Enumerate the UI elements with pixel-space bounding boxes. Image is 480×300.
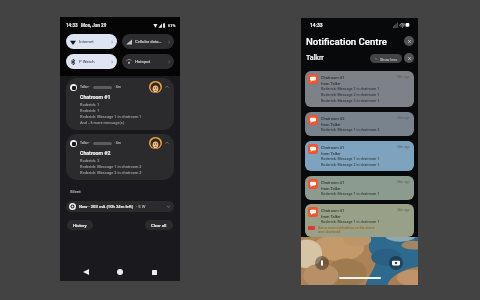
- staticText: Internet: [79, 39, 94, 44]
- staticText: Roderick: 1: [80, 102, 100, 107]
- button[interactable]: Flashlight: [315, 256, 329, 270]
- staticText: And ~6 more message(s): [80, 120, 125, 125]
- button[interactable]: Internet: [66, 34, 117, 49]
- staticText: 61%: [168, 23, 176, 28]
- staticText: Now · 203 mA (10h 24m left): [79, 204, 134, 209]
- staticText: Chatroom #1: [321, 180, 345, 185]
- staticText: from Talkrr: [321, 151, 341, 156]
- staticText: · 4m: [114, 85, 121, 89]
- staticText: Talkrr ·: [80, 85, 91, 89]
- staticText: Show less: [380, 57, 398, 61]
- button[interactable]: Home: [112, 264, 128, 280]
- staticText: from Talkrr: [321, 186, 341, 191]
- staticText: Roderick: Message 2 in chatroom 1: [321, 163, 380, 167]
- staticText: Mon, Jan 29: [81, 23, 107, 28]
- staticText: Notification Centre: [306, 36, 387, 47]
- staticText: Silent: [70, 189, 81, 194]
- staticText: Roderick: Message 1 in chatroom 1: [321, 220, 380, 224]
- staticText: Talkrr: [306, 54, 324, 62]
- staticText: · 5 W: [136, 204, 146, 209]
- button[interactable]: Recent apps: [146, 264, 162, 280]
- button[interactable]: Clear all: [145, 220, 173, 230]
- button[interactable]: Clear all notifications: [404, 36, 414, 46]
- staticText: 34m ago: [397, 116, 410, 120]
- button[interactable]: Chatroom #1: [305, 176, 414, 200]
- staticText: Clear all: [151, 223, 167, 228]
- button[interactable]: P Watch: [66, 54, 117, 69]
- staticText: 14:33: [310, 22, 323, 28]
- staticText: Roderick: Message 1 in chatroom 2: [80, 164, 142, 169]
- staticText: 34m ago: [397, 180, 410, 184]
- staticText: Chatroom #1: [321, 208, 345, 213]
- staticText: P Watch: [79, 59, 95, 64]
- button[interactable]: History: [67, 220, 93, 230]
- staticText: · 4m: [114, 141, 121, 145]
- staticText: Chatroom #1: [80, 94, 111, 100]
- staticText: 34m ago: [397, 145, 410, 149]
- button[interactable]: Camera: [389, 256, 403, 270]
- staticText: Roderick: Message 3 in chatroom 1: [321, 99, 380, 103]
- staticText: Roderick: Message 1 in chatroom 1: [321, 87, 380, 91]
- staticText: Roderick: Message 2 in chatroom 2: [80, 170, 142, 175]
- staticText: Chatroom #2: [80, 150, 111, 156]
- staticText: Chatroom #2: [321, 116, 345, 121]
- staticText: 34m ago: [397, 208, 410, 212]
- button[interactable]: Now · 203 mA (10h 24m left): [66, 201, 174, 212]
- button[interactable]: Back: [78, 264, 94, 280]
- button[interactable]: Clear Talkrr group: [404, 53, 414, 63]
- button[interactable]: Hotspot: [122, 54, 174, 69]
- staticText: Roderick: Message 1 in chatroom 2: [321, 128, 380, 132]
- staticText: were dismissed: [318, 230, 341, 234]
- staticText: History: [73, 223, 87, 228]
- staticText: Hotspot: [135, 59, 151, 64]
- button[interactable]: Chatroom #2: [305, 112, 414, 136]
- button[interactable]: Chatroom #1: [305, 204, 414, 237]
- staticText: Talkrr ·: [80, 141, 91, 145]
- staticText: Roderick: 2: [80, 158, 100, 163]
- staticText: from Talkrr: [321, 81, 341, 86]
- staticText: 14:33: [66, 23, 78, 28]
- button[interactable]: Chatroom #1: [305, 141, 414, 171]
- staticText: 34m ago: [397, 75, 410, 79]
- staticText: Chatroom #1: [321, 75, 345, 80]
- staticText: from Talkrr: [321, 122, 341, 127]
- staticText: One or more notifications on this device: [318, 226, 375, 230]
- button[interactable]: Talkrr ·: [66, 134, 174, 180]
- staticText: from Talkrr: [321, 214, 341, 219]
- staticText: Roderick: Message 1 in chatroom 1: [321, 192, 380, 196]
- staticText: Roderick: Message 1 in chatroom 1: [321, 157, 380, 161]
- staticText: Chatroom #1: [321, 145, 345, 150]
- staticText: Roderick: Message 2 in chatroom 1: [321, 93, 380, 97]
- button[interactable]: Chatroom #1: [305, 71, 414, 107]
- staticText: Cellular data…: [135, 39, 162, 44]
- staticText: Roderick: Message 1 in chatroom 1: [80, 114, 142, 119]
- button[interactable]: Talkrr ·: [66, 78, 174, 130]
- button[interactable]: Cellular data…: [122, 34, 174, 49]
- button[interactable]: Show less: [370, 54, 402, 63]
- staticText: Roderick: 1: [80, 108, 100, 113]
